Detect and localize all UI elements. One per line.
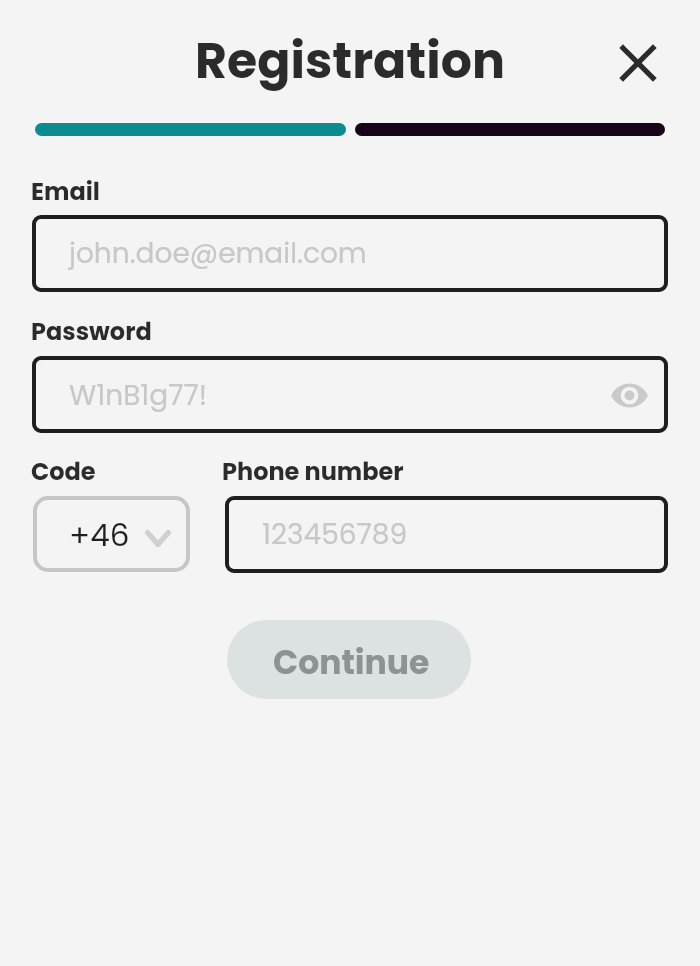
- button[interactable]: john.doe@email.com: [32, 215, 668, 292]
- button[interactable]: Show password: [606, 372, 652, 418]
- button[interactable]: 123456789: [225, 496, 668, 573]
- button[interactable]: Continue: [227, 620, 471, 699]
- staticText: 123456789: [262, 515, 408, 554]
- staticText: Code: [31, 455, 96, 489]
- staticText: john.doe@email.com: [69, 234, 367, 273]
- staticText: Continue: [273, 639, 430, 685]
- button[interactable]: +46: [33, 496, 190, 572]
- staticText: Email: [31, 175, 100, 209]
- button[interactable]: Close: [609, 34, 667, 92]
- staticText: Phone number: [222, 455, 404, 489]
- staticText: +46: [69, 513, 130, 556]
- staticText: Registration: [0, 27, 700, 96]
- button[interactable]: W1nB1g77!: [32, 356, 668, 433]
- staticText: W1nB1g77!: [69, 376, 606, 415]
- staticText: Password: [31, 315, 152, 349]
